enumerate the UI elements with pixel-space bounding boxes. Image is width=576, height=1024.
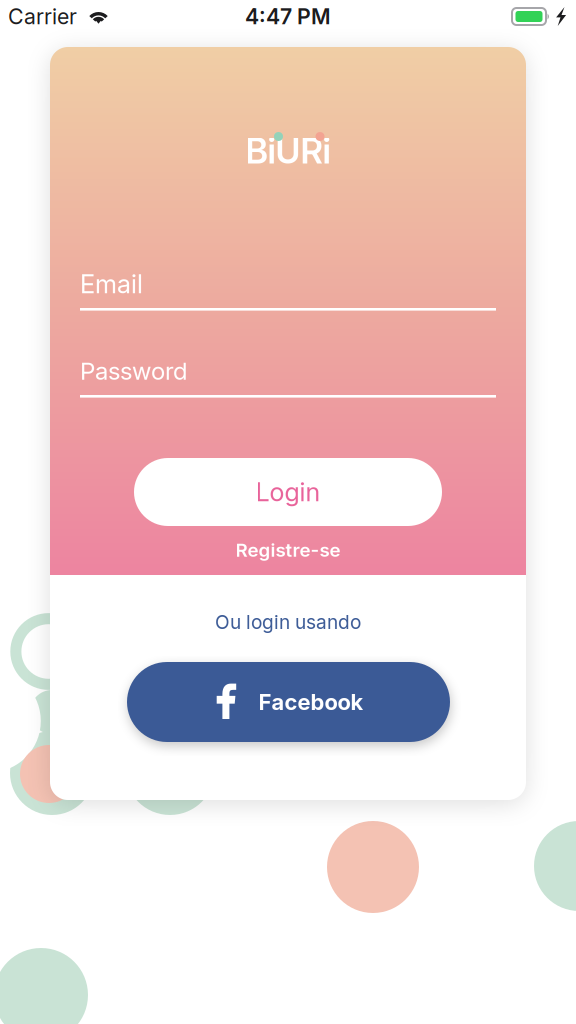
- staticText: BiURi: [245, 130, 330, 172]
- staticText: 4:47 PM: [245, 4, 331, 29]
- staticText: Facebook: [258, 689, 363, 715]
- staticText: Login: [255, 477, 320, 507]
- staticText: Registre-se: [235, 539, 340, 561]
- staticText: Password: [80, 356, 188, 386]
- button[interactable]: Registre-se: [50, 538, 526, 562]
- staticText: Carrier: [8, 4, 77, 29]
- staticText: Ou login usando: [215, 610, 361, 634]
- button[interactable]: Login: [134, 458, 442, 526]
- staticText: Email: [80, 269, 143, 299]
- button[interactable]: Facebook: [127, 662, 450, 742]
